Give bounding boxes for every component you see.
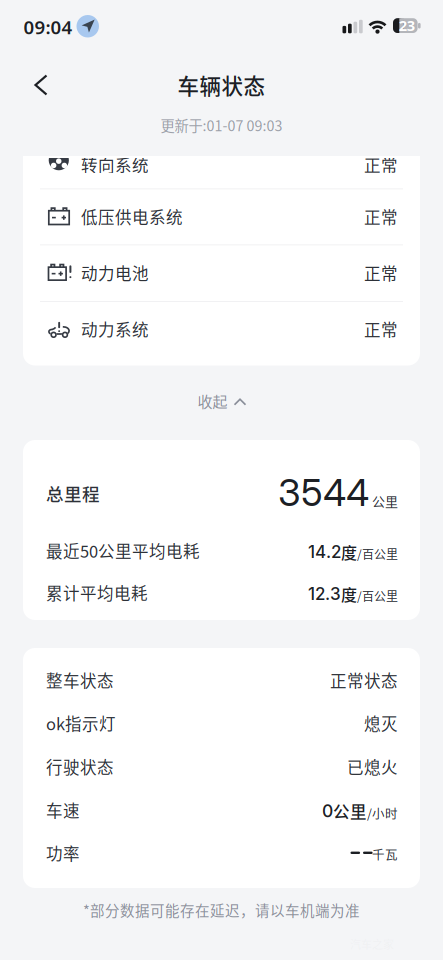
staticText: 累计平均电耗 bbox=[46, 581, 148, 604]
staticText: 公里 bbox=[372, 491, 398, 510]
staticText: *部分数据可能存在延迟，请以车机端为准 bbox=[83, 899, 360, 920]
staticText: 千瓦 bbox=[372, 845, 398, 863]
staticText: 车速 bbox=[46, 798, 80, 822]
staticText: 动力系统 bbox=[81, 317, 149, 341]
staticText: 总里程 bbox=[46, 480, 100, 506]
button[interactable]: 返回 bbox=[23, 67, 58, 102]
staticText: 动力电池 bbox=[81, 261, 149, 285]
staticText: 转向系统 bbox=[81, 153, 149, 176]
staticText: 正常状态 bbox=[330, 668, 398, 692]
staticText: 3544 bbox=[278, 470, 369, 515]
staticText: /百公里 bbox=[357, 587, 398, 604]
staticText: 23 bbox=[399, 15, 415, 35]
staticText: /小时 bbox=[367, 804, 398, 822]
staticText: 09:04 bbox=[23, 15, 72, 39]
staticText: 功率 bbox=[46, 841, 80, 865]
staticText: 正常 bbox=[364, 317, 398, 341]
button[interactable]: 收起 bbox=[187, 384, 255, 418]
staticText: 正常 bbox=[364, 261, 398, 285]
staticText: 度 bbox=[341, 582, 357, 605]
staticText: /百公里 bbox=[357, 545, 398, 562]
staticText: 熄灭 bbox=[364, 711, 398, 735]
staticText: 已熄火 bbox=[347, 755, 398, 778]
staticText: 车辆状态 bbox=[177, 69, 265, 100]
staticText: 更新于:01-07 09:03 bbox=[160, 115, 282, 135]
staticText: 12.3 bbox=[308, 583, 341, 604]
staticText: 0 bbox=[322, 800, 333, 821]
staticText: 整车状态 bbox=[46, 668, 114, 692]
staticText: 行驶状态 bbox=[46, 755, 114, 778]
staticText: 度 bbox=[341, 540, 357, 563]
staticText: 14.2 bbox=[308, 541, 341, 562]
staticText: 正常 bbox=[364, 153, 398, 176]
staticText: 公里 bbox=[333, 799, 367, 823]
staticText: 收起 bbox=[197, 390, 227, 412]
staticText: 正常 bbox=[364, 205, 398, 228]
staticText: 低压供电系统 bbox=[81, 205, 183, 228]
staticText: 最近50公里平均电耗 bbox=[46, 539, 200, 562]
staticText: ok指示灯 bbox=[46, 711, 116, 735]
